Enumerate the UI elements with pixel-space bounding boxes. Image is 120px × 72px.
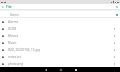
button[interactable]: Recent apps [68,67,83,72]
button[interactable]: Sort order [113,11,120,18]
staticText: IMG_20230104_12.jpg [8,48,40,52]
button[interactable]: IMG_20230104_12.jpg [0,46,120,53]
button[interactable]: More options [111,53,118,60]
button[interactable]: Navigate up [0,4,5,9]
staticText: Name [10,13,19,17]
staticText: File [6,4,12,9]
button[interactable]: notes.txt [0,53,120,60]
staticText: Music [8,41,17,45]
button[interactable]: Movies [0,32,120,39]
staticText: Movies [8,34,19,38]
button[interactable]: Search [114,4,119,9]
button[interactable]: photo.png [0,60,120,67]
button[interactable]: More options [111,25,118,32]
staticText: DCIM [8,27,17,31]
staticText: photo.png [8,62,24,66]
button[interactable]: Home [53,67,68,72]
button[interactable]: More options [111,46,118,53]
staticText: Alarms [8,20,19,24]
button[interactable]: More options [111,32,118,39]
button[interactable]: DCIM [0,25,120,32]
button[interactable]: Alarms [0,18,120,25]
button[interactable]: More options [111,60,118,67]
button[interactable]: Music [0,39,120,46]
button[interactable]: More options [111,39,118,46]
button[interactable]: Back [38,67,53,72]
staticText: notes.txt [8,55,21,59]
